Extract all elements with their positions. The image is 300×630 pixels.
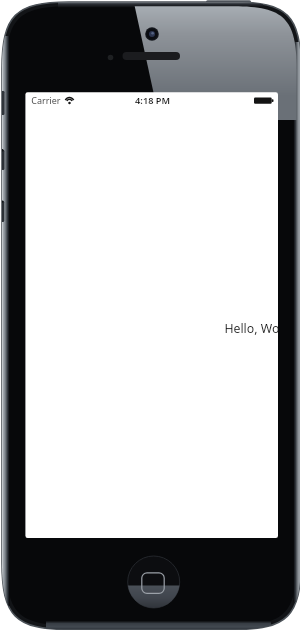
button[interactable] [0,0,300,630]
